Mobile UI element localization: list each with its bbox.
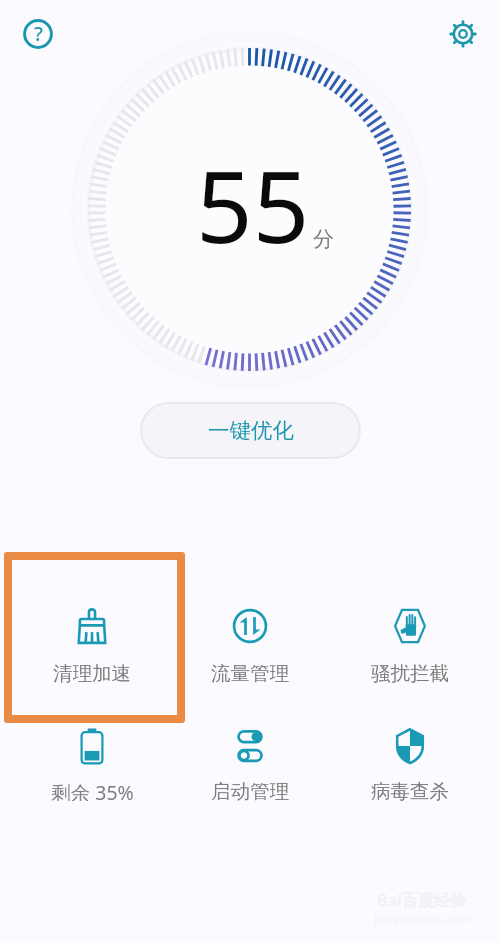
button[interactable]: 启动管理: [175, 720, 325, 812]
button[interactable]: 剩余 35%: [17, 720, 167, 812]
button[interactable]: 一键优化: [140, 402, 361, 459]
staticText: 清理加速: [53, 661, 131, 683]
staticText: 55: [196, 137, 310, 272]
button[interactable]: 骚扰拦截: [335, 600, 485, 694]
staticText: 骚扰拦截: [371, 661, 449, 683]
staticText: 病毒查杀: [371, 779, 449, 801]
staticText: 剩余 35%: [51, 779, 134, 801]
staticText: 一键优化: [208, 417, 294, 444]
staticText: 分: [313, 226, 334, 252]
button[interactable]: 清理加速: [4, 552, 185, 723]
staticText: ?: [34, 20, 43, 47]
staticText: 流量管理: [211, 661, 289, 683]
button[interactable]: 病毒查杀: [335, 720, 485, 812]
button[interactable]: Settings: [439, 10, 487, 58]
staticText: 启动管理: [211, 779, 289, 801]
button[interactable]: 流量管理: [175, 600, 325, 694]
button[interactable]: Help: [14, 10, 62, 58]
staticText: Bai百度经验: [377, 889, 467, 911]
